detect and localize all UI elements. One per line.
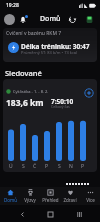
button[interactable]: Oznámení (18, 14, 29, 25)
button[interactable]: Domů (0, 187, 20, 205)
staticText: Výzvy (24, 197, 36, 203)
staticText: Přehled (42, 197, 59, 203)
button[interactable]: Baterie hodinek (84, 14, 95, 25)
staticText: Cvičení v bazénu RKM 7 (6, 30, 62, 37)
button[interactable]: Cvičení v bazénu RKM 7 (3, 28, 97, 62)
staticText: 19:28 (6, 2, 19, 9)
staticText: Délka tréninku: 30:47 (21, 42, 90, 51)
staticText: Sledované (5, 68, 42, 78)
button[interactable]: Výzvy (20, 187, 40, 205)
staticText: S (22, 163, 25, 170)
button[interactable]: Nedávné (72, 207, 86, 221)
staticText: 183,6 km (6, 97, 44, 109)
staticText: Zdraví (63, 197, 77, 203)
button[interactable]: Plocha (43, 207, 57, 221)
button[interactable]: Více (80, 187, 100, 205)
staticText: 7:50:10 (51, 97, 74, 106)
staticText: S (58, 163, 61, 170)
staticText: Celkový čas (51, 104, 70, 109)
button[interactable]: Zpět (15, 207, 29, 221)
staticText: Domů (4, 197, 17, 203)
staticText: N (69, 163, 73, 170)
staticText: Domů (40, 14, 61, 24)
staticText: P (81, 163, 85, 170)
button[interactable]: Synchronizovat (67, 14, 78, 25)
button[interactable]: Zdraví (60, 187, 80, 205)
button[interactable]: Přehled (40, 187, 60, 205)
staticText: Více (86, 197, 95, 203)
button[interactable]: Přidat (84, 88, 94, 98)
staticText: Cyklistika - 1. - 8. 2. (13, 89, 49, 94)
staticText: Ú (9, 163, 13, 170)
button[interactable]: Profil (4, 14, 15, 25)
staticText: Č (33, 163, 37, 170)
staticText: Průměrný ST: 83 b/m • 73 kcal (21, 50, 78, 55)
staticText: P (45, 163, 49, 170)
button[interactable]: Cyklistika - 1. - 8. 2. (3, 79, 97, 172)
